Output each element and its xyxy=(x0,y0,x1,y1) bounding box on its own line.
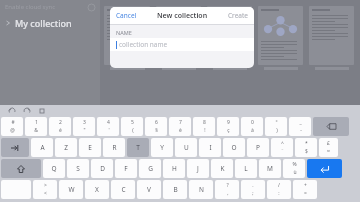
staticText: L xyxy=(244,164,248,173)
button[interactable]: Return xyxy=(307,159,342,178)
button[interactable]: 1 xyxy=(25,117,47,136)
staticText: ° xyxy=(275,119,278,126)
button[interactable]: 4 xyxy=(97,117,119,136)
staticText: 7 xyxy=(179,119,182,126)
staticText: K xyxy=(220,164,225,173)
staticText: D xyxy=(100,164,105,173)
staticText: - xyxy=(300,127,302,134)
button[interactable]: L xyxy=(235,159,257,178)
button[interactable]: 6 xyxy=(145,117,167,136)
staticText: 0 xyxy=(251,119,254,126)
staticText: Q xyxy=(51,164,57,173)
button[interactable]: M xyxy=(259,159,281,178)
staticText: + xyxy=(304,182,307,189)
button[interactable]: S xyxy=(67,159,89,178)
button[interactable]: Enable cloud sync xyxy=(5,0,95,14)
button[interactable]: ° xyxy=(265,117,287,136)
button[interactable]: Q xyxy=(43,159,65,178)
staticText: W xyxy=(68,185,75,194)
staticText: Create xyxy=(228,11,248,20)
staticText: Y xyxy=(160,143,164,152)
button[interactable]: * xyxy=(295,138,317,157)
staticText: F xyxy=(124,164,128,173)
button[interactable]: Paste xyxy=(36,105,48,116)
button[interactable]: Tab xyxy=(1,138,29,157)
staticText: C xyxy=(121,185,126,194)
button[interactable]: 2 xyxy=(49,117,71,136)
button[interactable]: ? xyxy=(215,180,239,199)
staticText: 2 xyxy=(59,119,62,126)
button[interactable]: R xyxy=(103,138,125,157)
button[interactable]: % xyxy=(283,159,305,178)
button[interactable]: C xyxy=(111,180,135,199)
button[interactable]: E xyxy=(79,138,101,157)
staticText: ç xyxy=(227,127,230,134)
button[interactable]: X xyxy=(85,180,109,199)
button[interactable]: I xyxy=(199,138,221,157)
staticText: V xyxy=(147,185,151,194)
button[interactable]: H xyxy=(163,159,185,178)
staticText: $ xyxy=(305,148,308,155)
staticText: / xyxy=(278,182,280,189)
staticText: _ xyxy=(299,119,302,126)
staticText: G xyxy=(148,164,153,173)
button[interactable]: + xyxy=(293,180,317,199)
button[interactable]: B xyxy=(163,180,187,199)
staticText: Enable cloud sync xyxy=(5,3,56,11)
staticText: = xyxy=(304,190,307,197)
staticText: : xyxy=(278,190,280,197)
button[interactable]: 9 xyxy=(217,117,239,136)
button[interactable]: collection name xyxy=(110,38,254,51)
button[interactable]: Cancel xyxy=(115,9,138,22)
staticText: < xyxy=(44,190,47,197)
button[interactable]: Undo xyxy=(6,105,18,116)
staticText: H xyxy=(172,164,177,173)
staticText: M xyxy=(267,164,273,173)
staticText: E xyxy=(88,143,92,152)
staticText: ^ xyxy=(281,140,284,147)
button[interactable]: Y xyxy=(151,138,173,157)
button[interactable]: D xyxy=(91,159,113,178)
button[interactable]: O xyxy=(223,138,245,157)
button[interactable]: J xyxy=(187,159,209,178)
staticText: , xyxy=(227,190,229,197)
staticText: B xyxy=(173,185,178,194)
button[interactable]: ^ xyxy=(271,138,293,157)
staticText: New collection xyxy=(157,11,208,21)
button[interactable]: . xyxy=(241,180,265,199)
staticText: ' xyxy=(108,127,110,134)
button[interactable]: Shift xyxy=(1,159,41,178)
button[interactable]: Backspace xyxy=(313,117,349,136)
button[interactable]: 5 xyxy=(121,117,143,136)
staticText: ? xyxy=(226,182,229,189)
staticText: 1 xyxy=(35,119,38,126)
button[interactable]: # xyxy=(1,117,23,136)
button[interactable]: 8 xyxy=(193,117,215,136)
other: Cloud sync xyxy=(88,4,95,11)
button[interactable]: F xyxy=(115,159,137,178)
button[interactable]: V xyxy=(137,180,161,199)
button[interactable]: U xyxy=(175,138,197,157)
button[interactable]: K xyxy=(211,159,233,178)
staticText: ) xyxy=(276,127,278,134)
button[interactable]: A xyxy=(31,138,53,157)
button[interactable]: 3 xyxy=(73,117,95,136)
button[interactable]: T xyxy=(127,138,149,157)
staticText: § xyxy=(155,127,158,134)
button[interactable]: G xyxy=(139,159,161,178)
button[interactable]: 7 xyxy=(169,117,191,136)
button[interactable]: _ xyxy=(289,117,311,136)
staticText: à xyxy=(251,127,254,134)
button[interactable]: 0 xyxy=(241,117,263,136)
button[interactable]: Z xyxy=(55,138,77,157)
button[interactable]: Redo xyxy=(21,105,33,116)
button[interactable]: W xyxy=(59,180,83,199)
button[interactable]: Create xyxy=(227,9,249,22)
button[interactable]: N xyxy=(189,180,213,199)
button[interactable]: / xyxy=(267,180,291,199)
button[interactable]: My collection xyxy=(5,14,95,32)
button[interactable]: P xyxy=(247,138,269,157)
button[interactable]: £ xyxy=(319,138,338,157)
button[interactable]: > xyxy=(33,180,57,199)
